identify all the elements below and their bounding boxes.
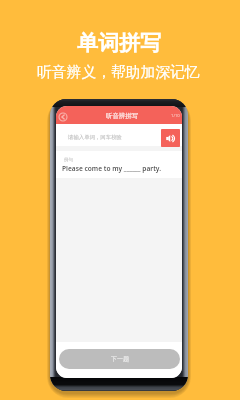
staticText: 听音辨义，帮助加深记忆	[37, 63, 200, 82]
staticText: 1/10	[171, 113, 180, 119]
staticText: 听音辨拼写	[106, 112, 138, 120]
button[interactable]: Play pronunciation	[161, 129, 180, 147]
staticText: 例句	[64, 157, 73, 163]
staticText: Please come to my ______ party.	[62, 164, 161, 173]
button[interactable]: 下一题	[59, 349, 180, 369]
staticText: 请输入单词，回车校验	[68, 134, 122, 141]
staticText: 单词拼写	[77, 30, 161, 56]
button[interactable]: Back	[58, 112, 68, 122]
staticText: 下一题	[111, 355, 129, 363]
